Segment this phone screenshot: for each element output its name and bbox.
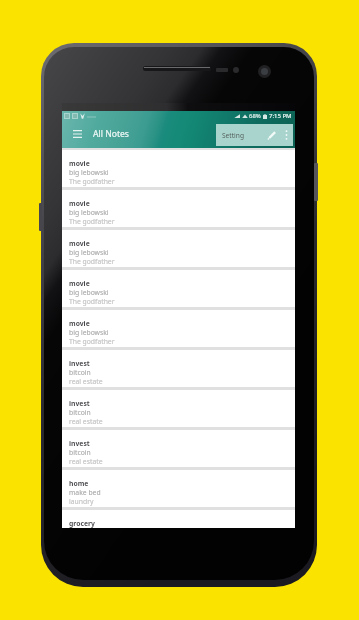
button[interactable]: More options <box>279 128 293 142</box>
button[interactable]: invest <box>62 390 295 427</box>
button[interactable]: invest <box>62 430 295 467</box>
staticText: movie <box>69 279 90 288</box>
staticText: big lebowski <box>69 248 109 257</box>
staticText: bitcoin <box>69 368 91 377</box>
button[interactable]: Navigation menu <box>66 123 88 145</box>
button[interactable]: movie <box>62 190 295 227</box>
staticText: invest <box>69 439 90 448</box>
staticText: movie <box>69 319 90 328</box>
staticText: grocery <box>69 519 95 528</box>
button[interactable]: invest <box>62 350 295 387</box>
staticText: real estate <box>69 457 103 466</box>
staticText: bitcoin <box>69 448 91 457</box>
staticText: laundry <box>69 497 94 506</box>
staticText: home <box>69 479 89 488</box>
button[interactable]: movie <box>62 310 295 347</box>
button[interactable]: Setting <box>222 131 244 140</box>
button[interactable]: home <box>62 470 295 507</box>
button[interactable]: grocery <box>62 510 295 528</box>
staticText: The godfather <box>69 217 115 226</box>
staticText: big lebowski <box>69 208 109 217</box>
staticText: The godfather <box>69 177 115 186</box>
staticText: movie <box>69 199 90 208</box>
staticText: All Notes <box>93 128 129 140</box>
staticText: real estate <box>69 377 103 386</box>
staticText: big lebowski <box>69 288 109 297</box>
button[interactable]: movie <box>62 270 295 307</box>
staticText: big lebowski <box>69 168 109 177</box>
staticText: invest <box>69 359 90 368</box>
staticText: The godfather <box>69 257 115 266</box>
staticText: bitcoin <box>69 408 91 417</box>
staticText: 68% <box>249 112 261 120</box>
button[interactable]: movie <box>62 230 295 267</box>
staticText: big lebowski <box>69 328 109 337</box>
staticText: The godfather <box>69 337 115 346</box>
button[interactable]: Edit note <box>263 127 279 143</box>
staticText: Setting <box>222 131 244 140</box>
staticText: invest <box>69 399 90 408</box>
staticText: The godfather <box>69 297 115 306</box>
button[interactable]: movie <box>62 150 295 187</box>
staticText: make bed <box>69 488 101 497</box>
staticText: movie <box>69 239 90 248</box>
staticText: 7:15 PM <box>269 112 292 120</box>
staticText: real estate <box>69 417 103 426</box>
staticText: movie <box>69 159 90 168</box>
